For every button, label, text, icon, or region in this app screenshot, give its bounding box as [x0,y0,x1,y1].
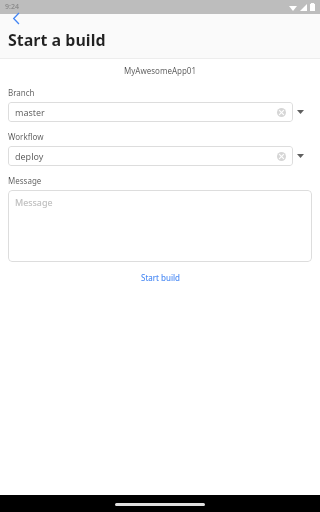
button[interactable]: deploy [8,146,293,166]
staticText: Message [15,196,53,208]
staticText: master [15,106,277,118]
staticText: Start build [141,272,180,283]
staticText: Branch [8,87,35,98]
button[interactable]: Show options [293,102,307,122]
button[interactable]: Show options [293,146,307,166]
button[interactable]: Message [8,190,312,262]
button[interactable]: master [8,102,293,122]
staticText: Message [8,175,42,186]
button[interactable]: Back [3,11,29,25]
staticText: Workflow [8,131,44,142]
button[interactable]: Start build [131,270,190,285]
staticText: 9:24 [5,2,19,12]
staticText: Start a build [8,29,106,51]
staticText: deploy [15,150,277,162]
staticText: MyAwesomeApp01 [0,65,320,76]
